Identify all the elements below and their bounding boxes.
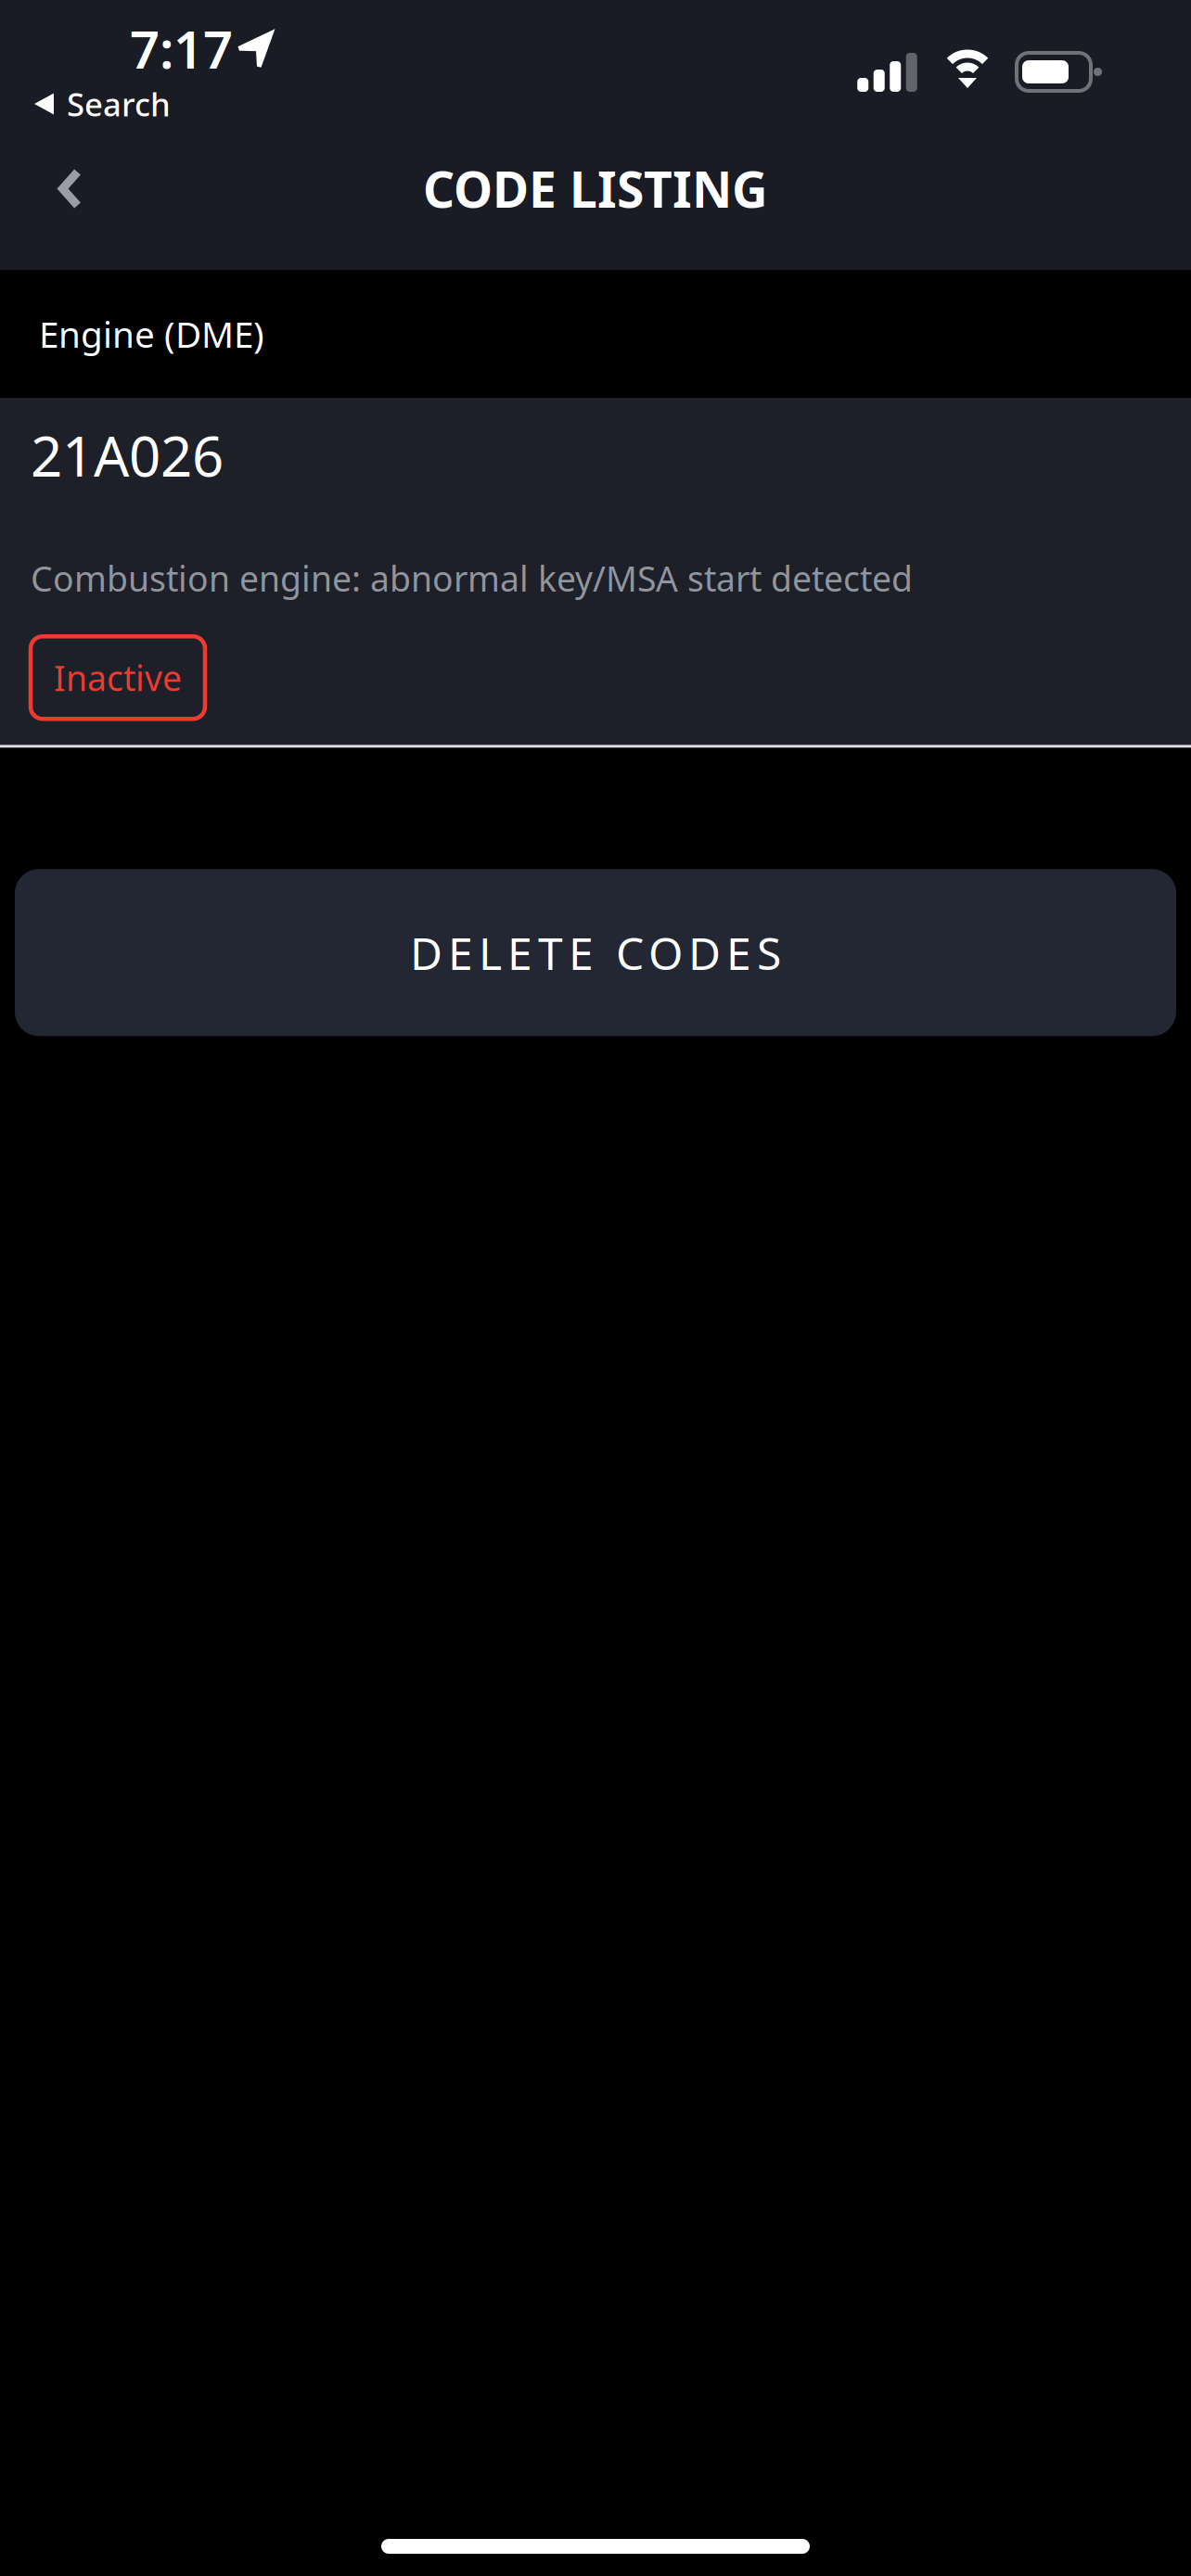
staticText: CODE LISTING <box>423 156 768 221</box>
staticText: Inactive <box>54 655 182 701</box>
staticText: Combustion engine: abnormal key/MSA star… <box>31 555 913 601</box>
staticText: Engine (DME) <box>39 310 264 358</box>
staticText: 7:17 <box>130 14 233 83</box>
button[interactable]: Search <box>0 0 171 125</box>
button[interactable]: DELETE CODES <box>15 869 1176 1036</box>
button[interactable]: Back <box>0 131 119 239</box>
button[interactable]: 21A026 <box>0 398 1191 745</box>
staticText: DELETE CODES <box>410 923 781 982</box>
staticText: Search <box>67 83 171 125</box>
staticText: 21A026 <box>31 418 224 492</box>
